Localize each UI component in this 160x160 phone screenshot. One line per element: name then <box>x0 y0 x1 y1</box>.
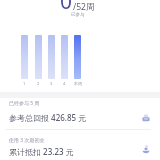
staticText: 参考总回报 426.85 元 <box>9 112 87 123</box>
button[interactable]: Wallet <box>142 114 150 122</box>
button[interactable]: Savings <box>142 145 150 153</box>
staticText: 3 <box>50 81 53 86</box>
button[interactable]: 参考总回报 426.85 元 <box>0 108 160 127</box>
staticText: 使用 3 次期初金 <box>9 137 45 144</box>
staticText: 2 <box>37 81 40 86</box>
staticText: 4 <box>63 81 66 86</box>
staticText: 累计抵扣 23.23 元 <box>9 146 74 157</box>
button[interactable]: 累计抵扣 23.23 元 <box>0 142 160 160</box>
staticText: 本周 <box>74 81 82 86</box>
staticText: 1 <box>23 81 26 86</box>
staticText: /52周 <box>73 1 95 13</box>
staticText: 0 <box>60 0 73 16</box>
staticText: 已参与 <box>71 12 85 18</box>
staticText: 已经参与 5 周 <box>9 100 40 107</box>
